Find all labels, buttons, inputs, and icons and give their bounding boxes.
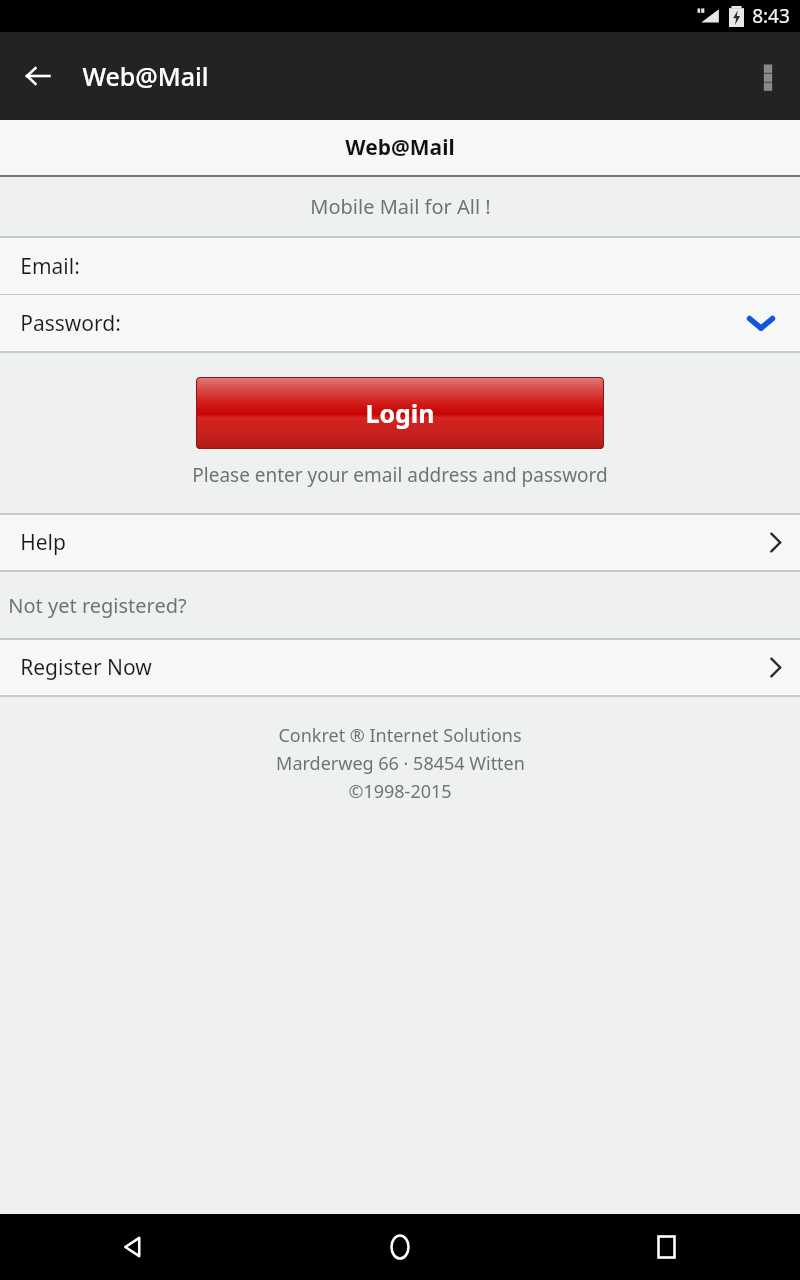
button[interactable]: Help: [0, 515, 800, 570]
button[interactable]: More options: [744, 52, 792, 100]
staticText: Help: [20, 528, 66, 557]
staticText: Not yet registered?: [8, 592, 187, 619]
staticText: Marderweg 66 · 58454 Witten: [276, 751, 525, 776]
button[interactable]: Email:: [0, 238, 800, 294]
staticText: Web@Mail: [345, 133, 455, 162]
staticText: Conkret ® Internet Solutions: [278, 723, 522, 748]
button[interactable]: Home: [266, 1214, 533, 1280]
button[interactable]: Register Now: [0, 640, 800, 695]
button[interactable]: Password:: [0, 295, 800, 351]
button[interactable]: Back: [0, 1214, 266, 1280]
button[interactable]: Login: [196, 377, 604, 449]
staticText: Mobile Mail for All !: [310, 193, 491, 220]
staticText: Email:: [20, 252, 80, 281]
staticText: Web@Mail: [82, 59, 209, 93]
staticText: Login: [365, 396, 435, 430]
staticText: ©1998-2015: [348, 779, 452, 804]
staticText: 8:43: [752, 3, 790, 29]
button[interactable]: Back: [14, 52, 62, 100]
staticText: Register Now: [20, 653, 152, 682]
button[interactable]: Recent apps: [533, 1214, 800, 1280]
staticText: Password:: [20, 309, 121, 338]
staticText: Please enter your email address and pass…: [192, 462, 608, 488]
